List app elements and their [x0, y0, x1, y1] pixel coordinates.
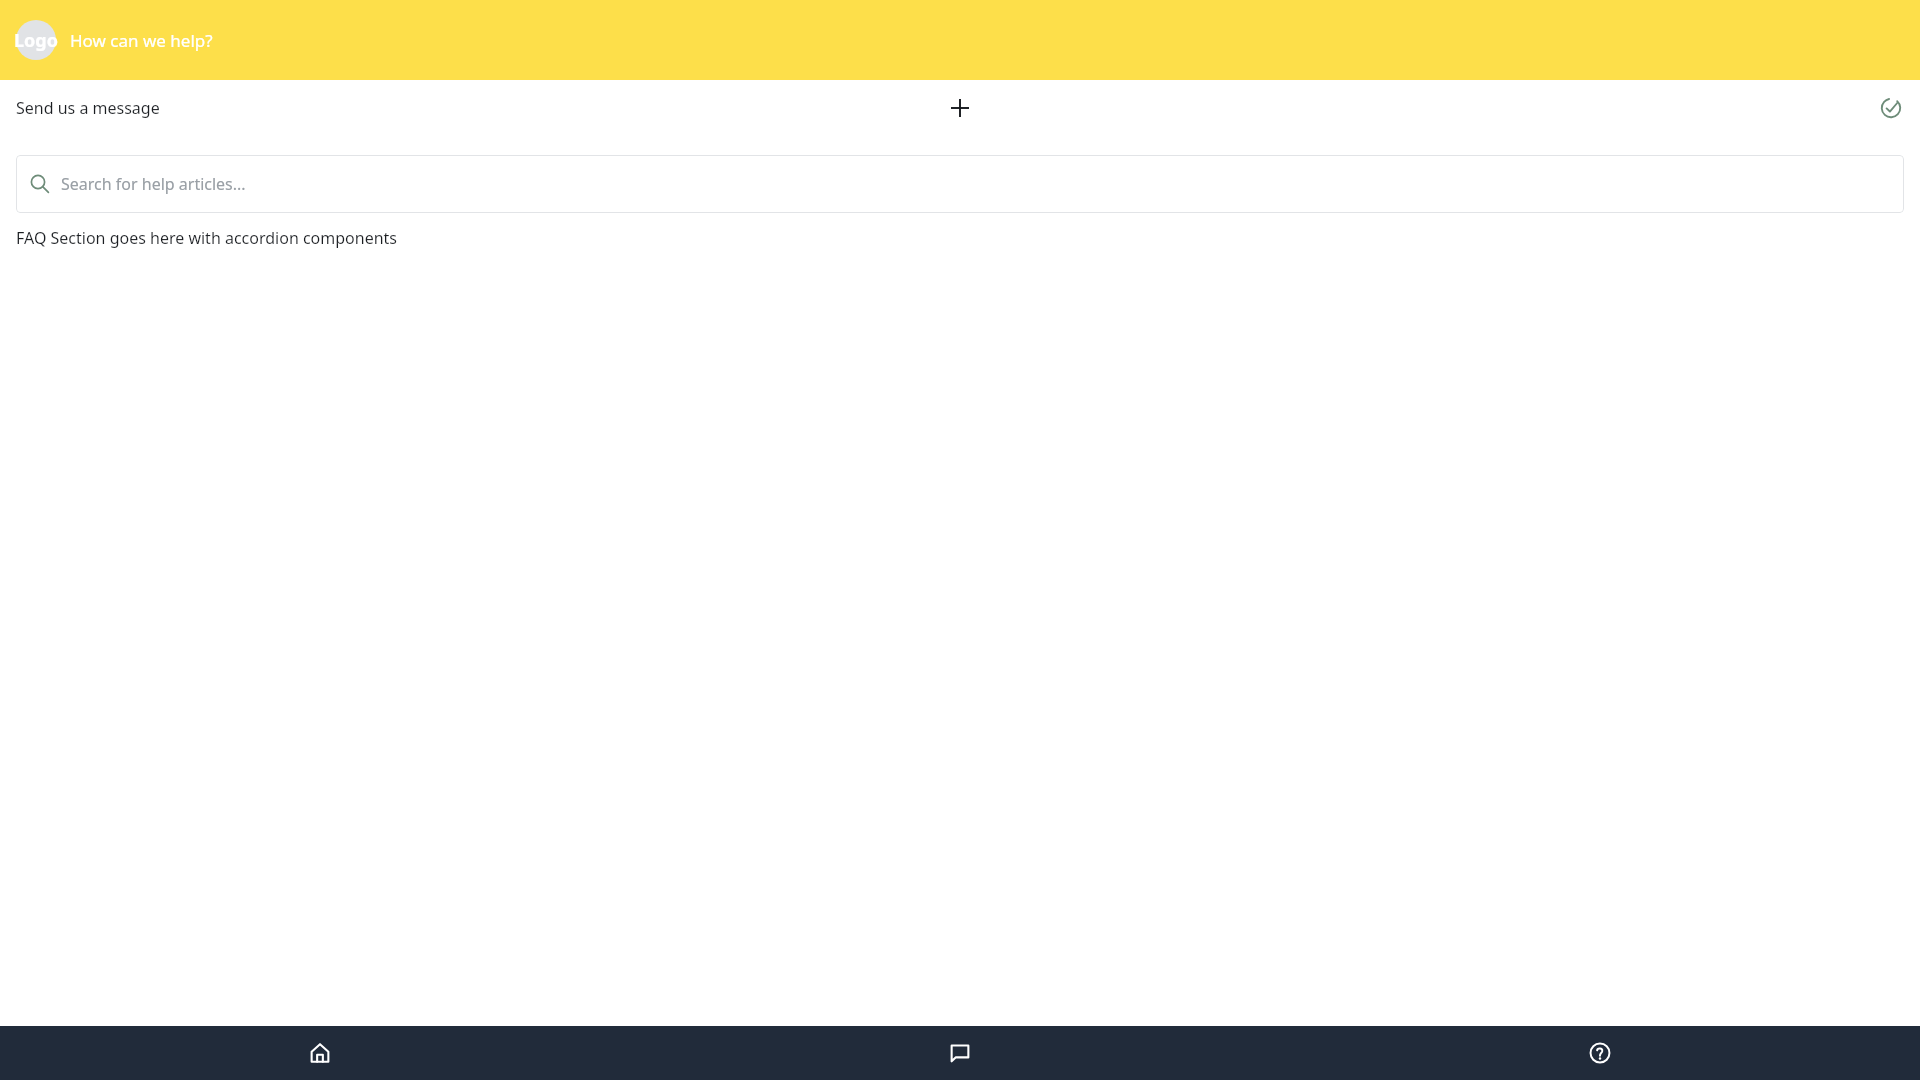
- button[interactable]: Messages: [640, 1026, 1280, 1080]
- button[interactable]: Mark as read: [1871, 88, 1911, 128]
- staticText: FAQ Section goes here with accordion com…: [16, 227, 398, 249]
- button[interactable]: Home: [0, 1026, 640, 1080]
- staticText: Search for help articles...: [61, 173, 246, 195]
- button[interactable]: Search for help articles...: [16, 155, 1904, 213]
- staticText: Logo: [14, 28, 58, 53]
- staticText: Send us a message: [16, 97, 160, 119]
- button[interactable]: Help: [1280, 1026, 1920, 1080]
- staticText: How can we help?: [70, 29, 213, 52]
- button[interactable]: New conversation: [940, 88, 980, 128]
- button[interactable]: Send us a message: [16, 97, 160, 119]
